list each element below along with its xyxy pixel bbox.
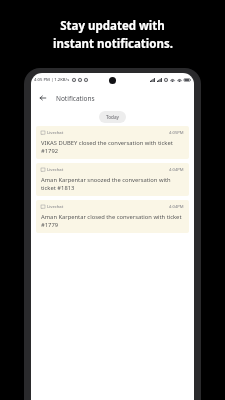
staticText: Notifications: [56, 94, 95, 103]
staticText: instant notifications.: [53, 36, 173, 52]
staticText: Aman Karpentar closed the conversation w…: [41, 213, 184, 229]
staticText: 4:05 PM | 1.2KB/s: [34, 77, 70, 83]
staticText: Today: [106, 114, 119, 120]
staticText: 4:05PM: [169, 130, 184, 136]
button[interactable]: Today: [99, 111, 126, 123]
button[interactable]: Livechat: [36, 126, 189, 159]
button[interactable]: Back: [36, 91, 50, 105]
staticText: Livechat: [47, 204, 64, 210]
button[interactable]: Livechat: [36, 200, 189, 233]
staticText: Stay updated with: [60, 18, 165, 34]
staticText: VIKAS DUBEY closed the conversation with…: [41, 139, 184, 155]
button[interactable]: Livechat: [36, 163, 189, 196]
staticText: 4:04PM: [169, 204, 184, 210]
staticText: Aman Karpentar snoozed the conversation …: [41, 176, 184, 192]
staticText: 4:04PM: [169, 167, 184, 173]
staticText: Livechat: [47, 130, 64, 136]
staticText: Livechat: [47, 167, 64, 173]
